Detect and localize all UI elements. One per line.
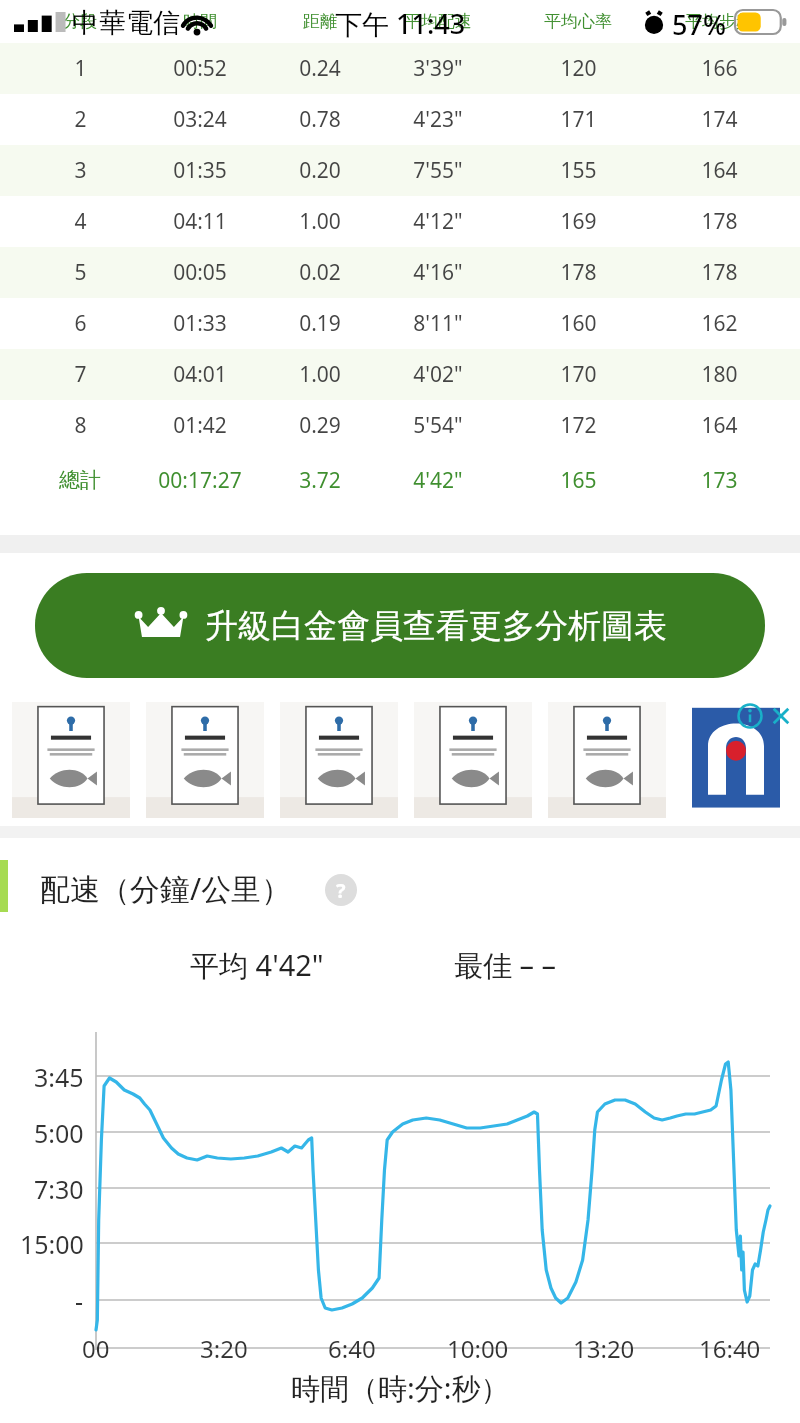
staticText: 平均配速 [404,11,472,32]
staticText: 3 [74,156,87,185]
staticText: 中華電信 [72,6,180,40]
button[interactable] [146,702,264,818]
staticText: 00:05 [173,258,227,287]
staticText: 7'55" [413,156,463,185]
staticText: 04:01 [173,360,227,389]
staticText: 171 [560,105,597,134]
button[interactable]: Help [325,874,357,906]
staticText: 120 [560,54,597,83]
staticText: 分段 [63,11,97,32]
staticText: 01:33 [173,309,227,338]
staticText: 01:35 [173,156,227,185]
staticText: 6:40 [328,1332,376,1365]
button[interactable]: 7 [0,349,800,400]
button[interactable]: 3 [0,145,800,196]
staticText: 平均步頻 [685,11,753,32]
staticText: 0.02 [299,258,341,287]
button[interactable]: 總計 [0,451,800,509]
staticText: 178 [701,207,738,236]
staticText: 15:00 [20,1227,84,1261]
staticText: 162 [701,309,738,338]
staticText: 178 [560,258,597,287]
staticText: 4'16" [413,258,463,287]
staticText: 170 [560,360,597,389]
staticText: 166 [701,54,738,83]
staticText: 178 [701,258,738,287]
staticText: 01:42 [173,411,227,440]
button[interactable]: 2 [0,94,800,145]
staticText: 180 [701,360,738,389]
staticText: 4'02" [413,360,463,389]
staticText: 時間（時:分:秒） [291,1368,510,1408]
button[interactable]: 5 [0,247,800,298]
staticText: 2 [74,105,87,134]
button[interactable] [548,702,666,818]
staticText: 0.78 [299,105,341,134]
staticText: 8'11" [413,309,463,338]
staticText: 最佳 – – [454,945,557,985]
staticText: 169 [560,207,597,236]
staticText: 距離 [303,11,337,32]
staticText: 4'23" [413,105,463,134]
button[interactable]: 1 [0,43,800,94]
button[interactable]: 升級白金會員查看更多分析圖表 [35,573,765,678]
staticText: 16:40 [699,1332,761,1365]
staticText: 配速（分鐘/公里） [40,868,292,909]
staticText: 5'54" [413,411,463,440]
staticText: 4'12" [413,207,463,236]
staticText: 155 [560,156,597,185]
staticText: 164 [701,156,738,185]
button[interactable] [12,702,130,818]
staticText: 總計 [59,467,101,493]
staticText: 平均心率 [544,11,612,32]
staticText: - [75,1284,84,1318]
button[interactable] [280,702,398,818]
staticText: 165 [560,466,597,495]
button[interactable] [414,702,532,818]
staticText: 0.20 [299,156,341,185]
staticText: 04:11 [173,207,227,236]
staticText: 3.72 [299,466,341,495]
staticText: 升級白金會員查看更多分析圖表 [205,605,667,647]
button[interactable]: Close ad [768,703,794,729]
staticText: 00:52 [173,54,227,83]
staticText: 時間 [183,11,217,32]
button[interactable]: 分段 [0,0,800,43]
staticText: 0.24 [299,54,341,83]
button[interactable]: 8 [0,400,800,451]
button[interactable]: Ad info [737,703,763,729]
button[interactable]: 6 [0,298,800,349]
staticText: 174 [701,105,738,134]
staticText: 0.19 [299,309,341,338]
staticText: 1.00 [299,360,341,389]
staticText: 1.00 [299,207,341,236]
staticText: 160 [560,309,597,338]
staticText: 10:00 [447,1332,509,1365]
staticText: ? [336,877,346,904]
staticText: 4'42" [413,466,463,495]
staticText: 164 [701,411,738,440]
staticText: 57% [672,6,726,43]
staticText: 173 [701,466,738,495]
staticText: 3:45 [34,1060,84,1094]
staticText: 1 [74,54,87,83]
staticText: 7 [74,360,87,389]
button[interactable] [686,702,786,818]
staticText: 4 [74,207,87,236]
staticText: 5 [74,258,87,287]
staticText: 8 [74,411,87,440]
staticText: 平均 4'42" [190,945,324,985]
staticText: 00:17:27 [158,466,242,495]
staticText: 7:30 [34,1172,84,1206]
staticText: 5:00 [34,1116,84,1150]
staticText: 3:20 [200,1332,248,1365]
staticText: 3'39" [413,54,463,83]
staticText: 172 [560,411,597,440]
staticText: 03:24 [173,105,227,134]
button[interactable]: 4 [0,196,800,247]
staticText: 6 [74,309,87,338]
staticText: 下午 11:43 [335,5,466,42]
staticText: 00 [82,1332,110,1365]
staticText: 0.29 [299,411,341,440]
staticText: 13:20 [573,1332,635,1365]
